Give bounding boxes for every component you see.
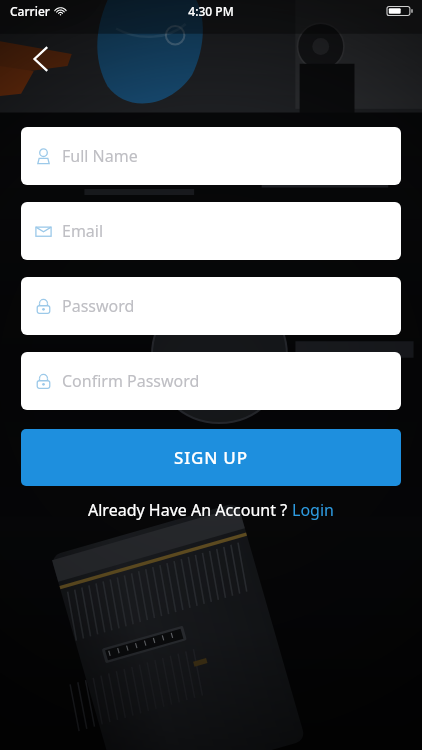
- staticText: SIGN UP: [174, 446, 248, 469]
- button[interactable]: SIGN UP: [21, 429, 401, 486]
- staticText: Login: [292, 499, 334, 521]
- staticText: Password: [62, 295, 135, 317]
- button[interactable]: Confirm Password: [21, 352, 401, 410]
- staticText: 4:30 PM: [188, 3, 234, 19]
- button[interactable]: Full Name: [21, 127, 401, 185]
- button[interactable]: Email: [21, 202, 401, 260]
- button[interactable]: Back: [20, 37, 64, 81]
- staticText: Carrier: [10, 3, 50, 19]
- staticText: Email: [62, 220, 104, 242]
- button[interactable]: Login: [292, 499, 334, 521]
- staticText: Confirm Password: [62, 370, 200, 392]
- button[interactable]: Password: [21, 277, 401, 335]
- staticText: Already Have An Account ?: [88, 499, 292, 521]
- staticText: Full Name: [62, 145, 138, 167]
